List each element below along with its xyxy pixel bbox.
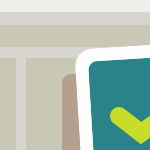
button[interactable]: Task complete [88, 56, 150, 150]
